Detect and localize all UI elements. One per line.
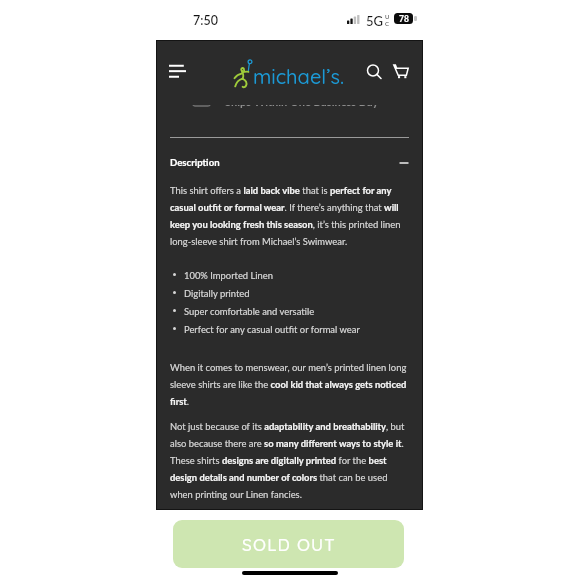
button[interactable]: Search xyxy=(361,59,387,85)
staticText: michael’s. xyxy=(253,64,345,89)
button[interactable]: Cart xyxy=(388,59,414,85)
staticText: This shirt offers a laid back vibe that … xyxy=(170,180,409,248)
staticText: 100% Imported Linen xyxy=(184,267,274,281)
staticText: SOLD OUT xyxy=(242,534,336,555)
staticText: When it comes to menswear, our men’s pri… xyxy=(170,357,409,408)
staticText: C xyxy=(385,20,389,27)
staticText: 78 xyxy=(399,14,409,24)
staticText: U xyxy=(385,13,390,20)
staticText: Not just because of its adaptability and… xyxy=(170,416,409,501)
staticText: Digitally printed xyxy=(184,285,250,299)
staticText: 7:50 xyxy=(193,13,218,28)
staticText: 5G xyxy=(366,13,384,29)
staticText: Description xyxy=(170,157,220,169)
button[interactable]: Menu xyxy=(161,56,195,86)
button[interactable]: Description xyxy=(170,152,409,174)
staticText: Perfect for any casual outfit or formal … xyxy=(184,321,360,335)
staticText: Ships Within One Business Day xyxy=(225,105,379,108)
button[interactable]: SOLD OUT xyxy=(173,520,404,568)
staticText: Super comfortable and versatile xyxy=(184,303,315,317)
